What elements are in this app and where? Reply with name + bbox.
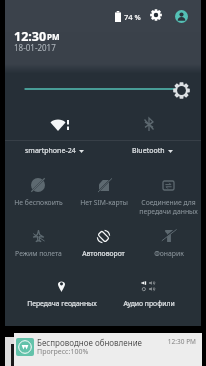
staticText: smartphone-24 [25, 146, 76, 156]
button[interactable]: User account [175, 10, 188, 23]
staticText: Режим полета [15, 249, 62, 258]
button[interactable]: Bluetooth [103, 104, 201, 162]
button[interactable]: Автоповорот [71, 216, 136, 266]
staticText: Прогресс:100% [37, 347, 89, 357]
staticText: Аудио профили [123, 299, 175, 308]
button[interactable]: Settings [147, 6, 164, 23]
button[interactable]: Режим полета [5, 216, 71, 266]
button[interactable]: Не беспокоить [5, 165, 71, 215]
button[interactable]: Brightness settings [171, 80, 191, 100]
button[interactable]: Соединение для передачи данных [136, 165, 201, 215]
staticText: Bluetooth [132, 146, 165, 156]
button[interactable]: Аудио профили [105, 266, 192, 316]
button[interactable]: smartphone-24 [5, 104, 103, 162]
staticText: Передача геоданных [27, 299, 97, 308]
button[interactable]: Беспроводное обновление [14, 333, 202, 366]
staticText: Беспроводное обновление [37, 337, 143, 348]
button[interactable]: Нет SIM-карты [71, 165, 136, 215]
button[interactable]: Фонарик [136, 216, 201, 266]
button[interactable]: Передача геоданных [18, 266, 105, 316]
staticText: 74 % [124, 12, 141, 22]
staticText: Автоповорот [82, 249, 125, 258]
staticText: PM [47, 31, 60, 42]
staticText: Нет SIM-карты [80, 198, 128, 207]
staticText: Соединение для передачи данных [139, 198, 198, 216]
staticText: 18-01-2017 [14, 42, 56, 53]
staticText: 12:30 PM [166, 337, 196, 346]
staticText: Фонарик [154, 249, 184, 258]
staticText: 12:30 [14, 28, 47, 45]
staticText: Не беспокоить [14, 198, 63, 207]
